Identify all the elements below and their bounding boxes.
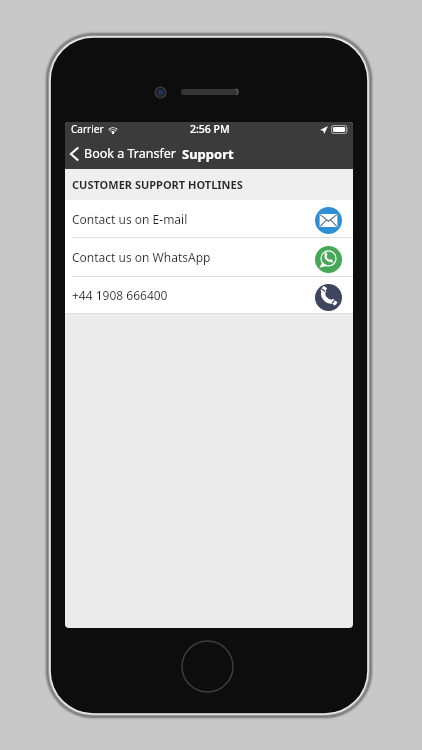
staticText: Support bbox=[182, 145, 234, 163]
staticText: Carrier bbox=[71, 122, 104, 136]
button[interactable]: Call +44 1908 666400 bbox=[65, 277, 353, 313]
staticText: CUSTOMER SUPPORT HOTLINES bbox=[72, 177, 243, 192]
staticText: Book a Transfer bbox=[84, 145, 176, 162]
staticText: 2:56 PM bbox=[190, 122, 230, 136]
button[interactable]: Email support bbox=[65, 200, 353, 237]
button[interactable]: WhatsApp support bbox=[65, 238, 353, 276]
staticText: Contact us on WhatsApp bbox=[72, 249, 211, 265]
staticText: +44 1908 666400 bbox=[72, 287, 168, 303]
button[interactable]: Back to Book a Transfer bbox=[65, 142, 180, 165]
staticText: Contact us on E-mail bbox=[72, 211, 188, 227]
